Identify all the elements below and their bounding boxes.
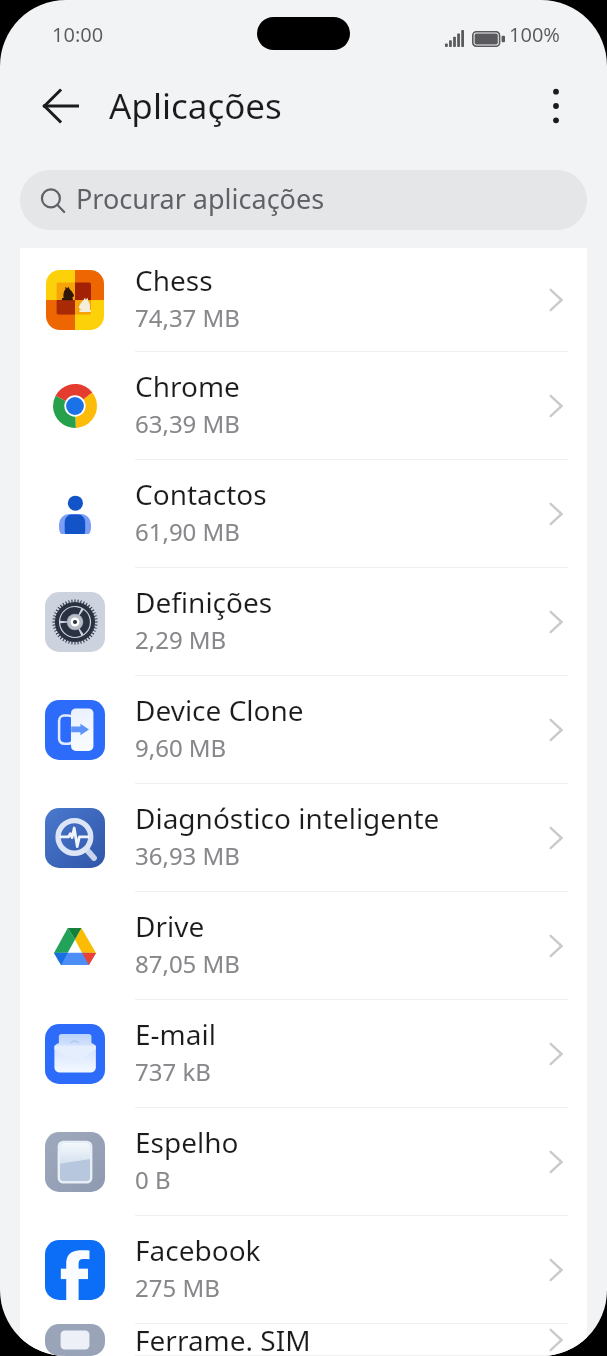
other: Open Chess — [540, 287, 566, 313]
button[interactable]: Definições — [20, 568, 587, 676]
staticText: 100% — [509, 21, 560, 48]
other: Open Drive — [540, 933, 566, 959]
other: Open Device Clone — [540, 717, 566, 743]
button[interactable]: Procurar aplicações — [20, 170, 587, 230]
staticText: 737 kB — [135, 1055, 211, 1088]
staticText: Chrome — [135, 367, 240, 405]
staticText: 36,93 MB — [135, 839, 240, 872]
staticText: Contactos — [135, 475, 267, 513]
staticText: 9,60 MB — [135, 731, 227, 764]
button[interactable]: Back — [37, 82, 85, 130]
button[interactable]: Espelho — [20, 1108, 587, 1216]
staticText: 0 B — [135, 1163, 171, 1196]
staticText: Chess — [135, 261, 213, 299]
staticText: 61,90 MB — [135, 515, 240, 548]
staticText: Ferrame. SIM — [135, 1321, 311, 1353]
other: Open Definições — [540, 609, 566, 635]
staticText: Drive — [135, 907, 205, 945]
button[interactable]: Chrome — [20, 352, 587, 460]
other: Open E-mail — [540, 1041, 566, 1067]
staticText: Diagnóstico inteligente — [135, 799, 440, 837]
button[interactable]: More options — [532, 82, 580, 130]
button[interactable]: Ferrame. SIM — [20, 1324, 587, 1356]
other: Open Espelho — [540, 1149, 566, 1175]
staticText: Device Clone — [135, 691, 304, 729]
staticText: E-mail — [135, 1015, 216, 1053]
staticText: Facebook — [135, 1231, 261, 1269]
button[interactable]: Chess — [20, 248, 587, 352]
staticText: 10:00 — [52, 21, 104, 48]
other: Open Contactos — [540, 501, 566, 527]
button[interactable]: Device Clone — [20, 676, 587, 784]
staticText: Aplicações — [109, 82, 282, 130]
other: Open Facebook — [540, 1257, 566, 1283]
staticText: Definições — [135, 583, 273, 621]
staticText: 74,37 MB — [135, 301, 240, 334]
other: Open Ferrame. SIM — [540, 1327, 566, 1353]
other: Open Diagnóstico inteligente — [540, 825, 566, 851]
button[interactable]: Diagnóstico inteligente — [20, 784, 587, 892]
staticText: Procurar aplicações — [76, 180, 325, 217]
staticText: 2,29 MB — [135, 623, 227, 656]
button[interactable]: Contactos — [20, 460, 587, 568]
other: Open Chrome — [540, 393, 566, 419]
button[interactable]: Drive — [20, 892, 587, 1000]
staticText: 275 MB — [135, 1271, 220, 1304]
staticText: 63,39 MB — [135, 407, 240, 440]
button[interactable]: E-mail — [20, 1000, 587, 1108]
staticText: Espelho — [135, 1123, 239, 1161]
staticText: 87,05 MB — [135, 947, 240, 980]
button[interactable]: Facebook — [20, 1216, 587, 1324]
